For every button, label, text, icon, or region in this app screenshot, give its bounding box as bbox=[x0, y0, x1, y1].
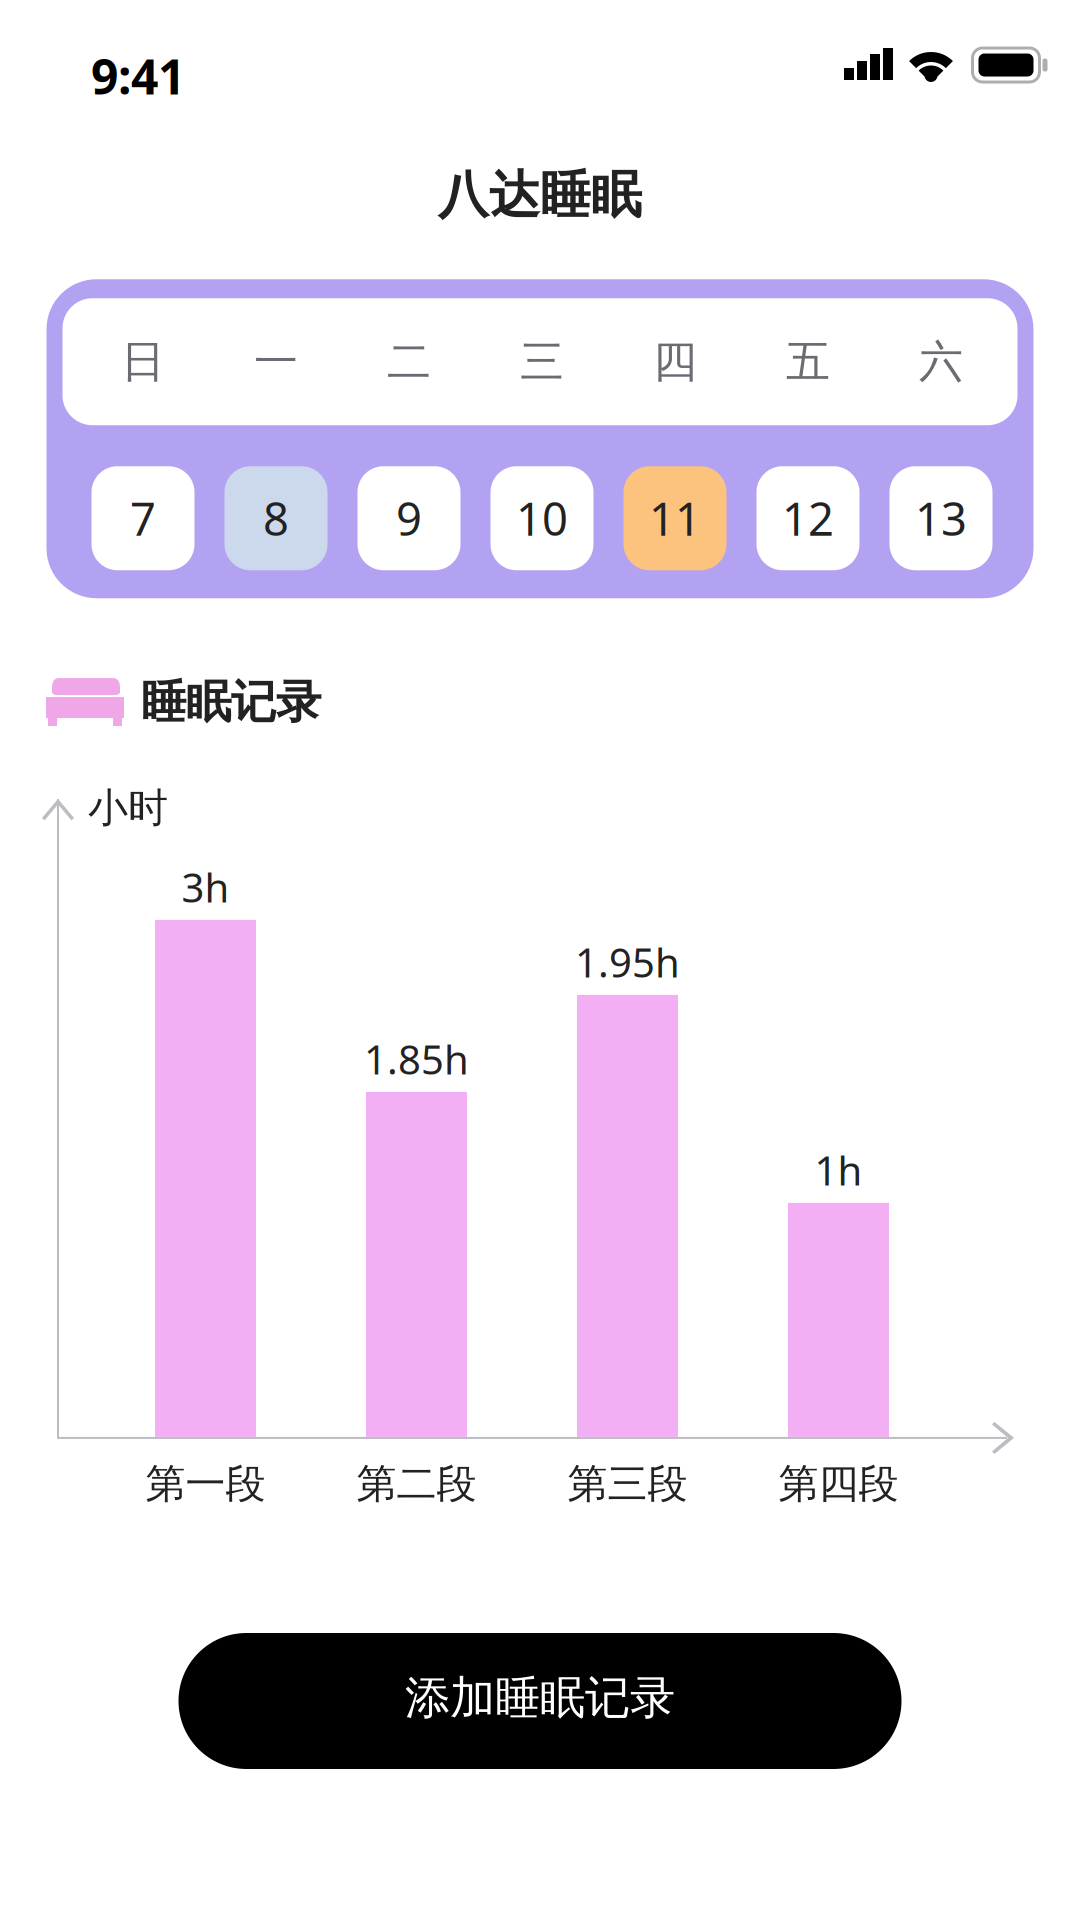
staticText: 1h bbox=[814, 1143, 862, 1196]
button[interactable]: 一 8 日 bbox=[224, 466, 327, 570]
staticText: 第四段 bbox=[778, 1459, 898, 1508]
staticText: 六 bbox=[919, 335, 963, 389]
staticText: 添加睡眠记录 bbox=[405, 1670, 675, 1726]
button[interactable]: 日 7 日 bbox=[91, 466, 194, 570]
staticText: 1.85h bbox=[364, 1032, 469, 1085]
staticText: 9 bbox=[396, 488, 422, 548]
staticText: 3h bbox=[181, 860, 229, 913]
button[interactable]: 六 13 日 bbox=[889, 466, 992, 570]
staticText: 7 bbox=[130, 488, 156, 548]
staticText: 三 bbox=[520, 335, 564, 389]
button[interactable]: 三 10 日 bbox=[490, 466, 593, 570]
button[interactable]: 二 9 日 bbox=[357, 466, 460, 570]
staticText: 第一段 bbox=[145, 1459, 265, 1508]
staticText: 第三段 bbox=[567, 1459, 687, 1508]
staticText: 一 bbox=[254, 335, 298, 389]
staticText: 五 bbox=[786, 335, 830, 389]
staticText: 1.95h bbox=[575, 935, 680, 988]
staticText: 9:41 bbox=[91, 44, 185, 108]
staticText: 二 bbox=[387, 335, 431, 389]
staticText: 日 bbox=[121, 335, 165, 389]
staticText: 小时 bbox=[88, 783, 168, 832]
staticText: 11 bbox=[649, 488, 701, 548]
staticText: 13 bbox=[915, 488, 967, 548]
staticText: 八达睡眠 bbox=[438, 164, 642, 226]
staticText: 四 bbox=[653, 335, 697, 389]
button[interactable]: 五 12 日 bbox=[756, 466, 859, 570]
staticText: 第二段 bbox=[356, 1459, 476, 1508]
staticText: 睡眠记录 bbox=[141, 674, 321, 730]
staticText: 8 bbox=[263, 488, 289, 548]
staticText: 12 bbox=[782, 488, 834, 548]
staticText: 10 bbox=[516, 488, 568, 548]
button[interactable]: 添加睡眠记录 bbox=[178, 1633, 901, 1769]
button[interactable]: 四 11 日 bbox=[623, 466, 726, 570]
